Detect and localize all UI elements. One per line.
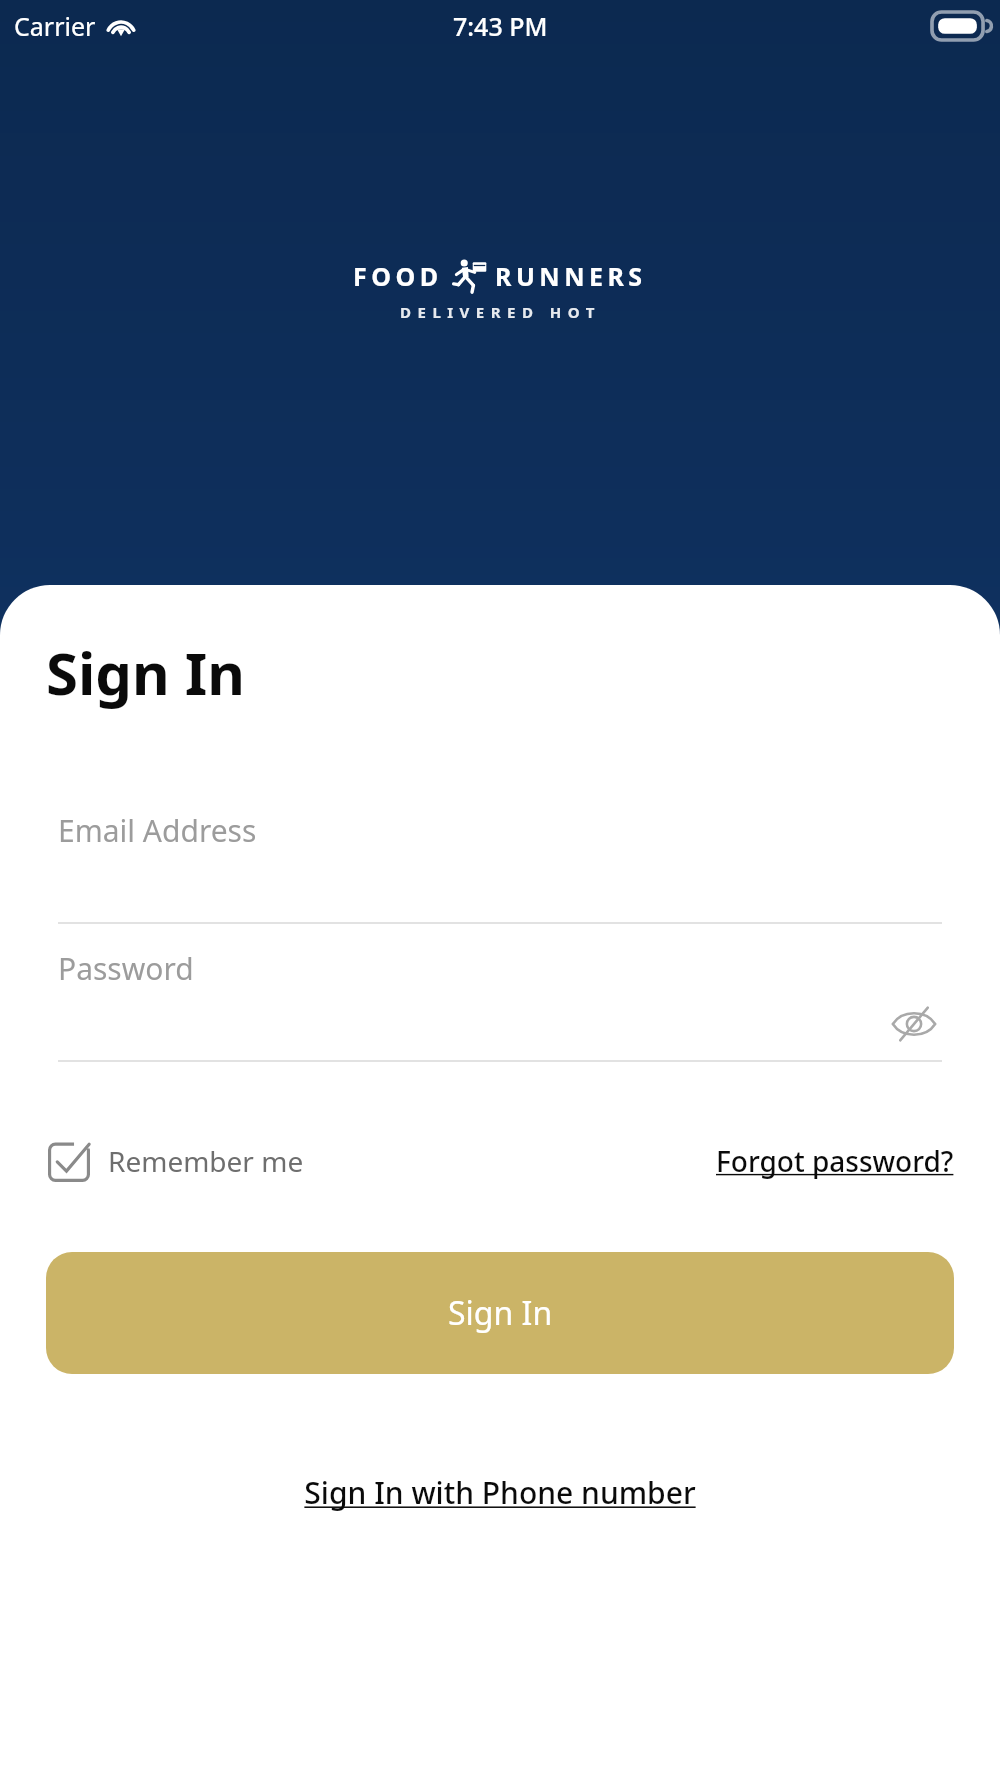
staticText: Email Address (58, 810, 257, 851)
staticText: DELIVERED HOT (400, 302, 601, 322)
button[interactable]: Remember me (46, 1134, 306, 1188)
button[interactable]: Password (58, 944, 942, 1060)
staticText: FOOD (353, 259, 443, 293)
staticText: Sign In (46, 633, 245, 712)
button[interactable]: Forgot password? (716, 1136, 954, 1186)
button[interactable]: Sign In (46, 1252, 954, 1374)
staticText: 7:43 PM (453, 9, 548, 43)
staticText: Carrier (14, 9, 96, 43)
button[interactable]: Sign In with Phone number (300, 1466, 700, 1519)
button[interactable]: Email Address (58, 806, 942, 922)
button[interactable]: Show password (886, 996, 942, 1052)
staticText: RUNNERS (495, 259, 647, 293)
staticText: Password (58, 948, 194, 989)
staticText: Sign In (448, 1291, 553, 1335)
staticText: Remember me (108, 1142, 304, 1180)
